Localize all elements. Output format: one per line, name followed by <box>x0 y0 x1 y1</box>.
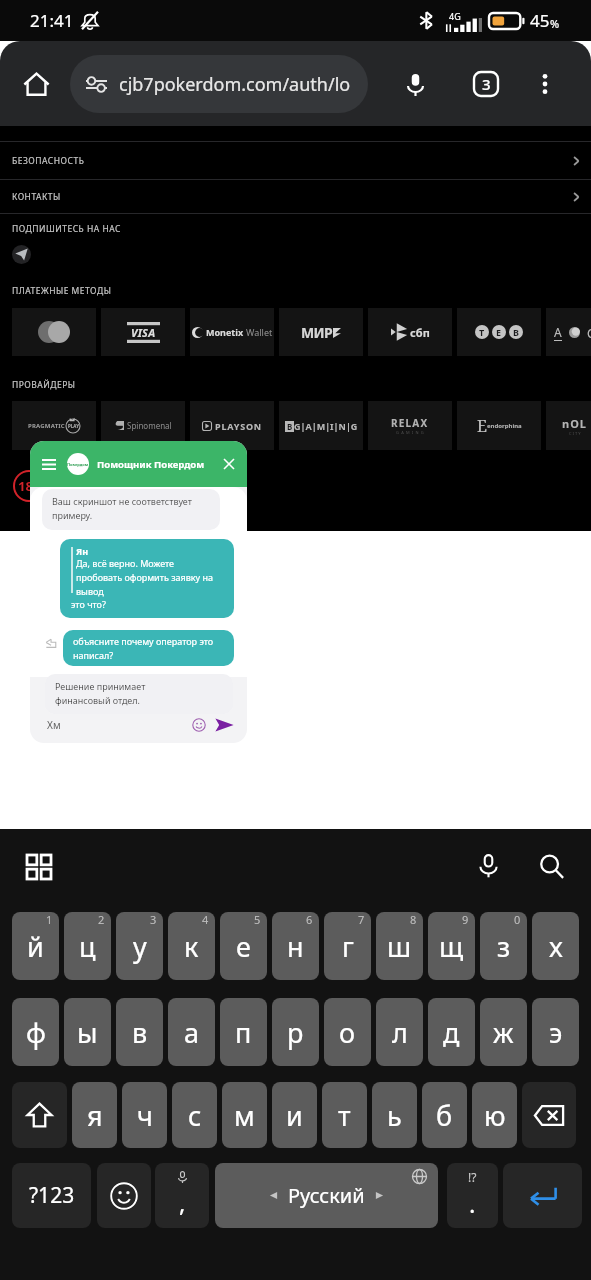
staticText: 0 <box>514 912 521 927</box>
button[interactable]: E <box>457 401 541 450</box>
staticText: МИР <box>301 323 333 342</box>
button[interactable]: з <box>480 912 527 980</box>
staticText: Monetix <box>206 326 244 338</box>
button[interactable]: ю <box>472 1082 517 1148</box>
staticText: 3 <box>150 912 157 927</box>
button[interactable]: и <box>272 1082 317 1148</box>
button[interactable]: Menu <box>37 453 60 476</box>
staticText: д <box>443 1014 460 1051</box>
button[interactable]: м <box>222 1082 267 1148</box>
staticText: к <box>184 928 199 965</box>
button[interactable]: д <box>428 998 475 1066</box>
button[interactable]: ш <box>376 912 423 980</box>
button[interactable]: A <box>546 308 591 356</box>
button[interactable]: р <box>272 998 319 1066</box>
button[interactable]: More options <box>524 63 566 105</box>
staticText: PRAGMATIC <box>28 422 65 430</box>
button[interactable]: щ <box>428 912 475 980</box>
staticText: 21:41 <box>30 9 74 32</box>
button[interactable]: Voice search <box>394 63 436 105</box>
button[interactable]: B <box>279 401 363 450</box>
button[interactable]: T <box>457 308 541 356</box>
staticText: б <box>436 1097 453 1134</box>
staticText: л <box>392 1014 408 1051</box>
button[interactable]: е <box>220 912 267 980</box>
staticText: ПРОВАЙДЕРЫ <box>12 379 76 391</box>
button[interactable]: Backspace <box>522 1082 576 1148</box>
button[interactable]: PRAGMATIC <box>12 401 96 450</box>
button[interactable] <box>12 308 96 356</box>
button[interactable]: Shift <box>12 1082 67 1148</box>
button[interactable]: к <box>168 912 215 980</box>
staticText: C I T Y <box>569 431 581 436</box>
button[interactable]: Monetix <box>190 308 274 356</box>
button[interactable]: о <box>324 998 371 1066</box>
button[interactable]: БЕЗОПАСНОСТЬ <box>0 142 591 179</box>
button[interactable]: Tabs <box>465 63 507 105</box>
button[interactable]: Home <box>14 62 58 106</box>
button[interactable]: , <box>155 1163 209 1228</box>
button[interactable]: Русский <box>215 1163 438 1228</box>
button[interactable]: п <box>220 998 267 1066</box>
button[interactable]: nOL <box>546 401 591 450</box>
button[interactable]: Voice input <box>470 848 507 885</box>
staticText: о <box>339 1014 356 1051</box>
staticText: БЕЗОПАСНОСТЬ <box>12 155 85 167</box>
button[interactable]: э <box>532 998 579 1066</box>
button[interactable]: Close <box>219 454 239 474</box>
staticText: это что? <box>71 598 106 610</box>
staticText: Русский <box>288 1182 365 1209</box>
staticText: з <box>497 928 511 965</box>
button[interactable]: я <box>72 1082 117 1148</box>
button[interactable]: сбп <box>368 308 452 356</box>
button[interactable]: у <box>116 912 163 980</box>
button[interactable]: Telegram <box>12 245 31 264</box>
staticText: Да, всё верно. Можете пробовать оформить… <box>76 557 214 598</box>
staticText: VISA <box>131 325 156 340</box>
button[interactable]: в <box>116 998 163 1066</box>
button[interactable]: б <box>422 1082 467 1148</box>
button[interactable]: RELAX <box>368 401 452 450</box>
button[interactable]: PLAYSON <box>190 401 274 450</box>
button[interactable]: ж <box>480 998 527 1066</box>
button[interactable]: а <box>168 998 215 1066</box>
button[interactable]: МИР <box>279 308 363 356</box>
button[interactable]: ь <box>372 1082 417 1148</box>
button[interactable]: т <box>322 1082 367 1148</box>
staticText: G|A|M|I|N|G <box>294 420 358 432</box>
button[interactable]: Emoji <box>97 1163 151 1228</box>
staticText: 6 <box>306 912 313 927</box>
staticText: 2 <box>98 912 105 927</box>
button[interactable]: VISA <box>101 308 185 356</box>
staticText: Spinomenal <box>127 420 172 431</box>
staticText: cjb7pokerdom.com/auth/lo <box>119 72 351 97</box>
button[interactable]: КОНТАКТЫ <box>0 180 591 213</box>
button[interactable]: ф <box>12 998 59 1066</box>
button[interactable]: Keyboard layouts <box>22 850 55 883</box>
button[interactable]: ч <box>122 1082 167 1148</box>
staticText: Хм <box>47 718 61 732</box>
button[interactable]: х <box>532 912 579 980</box>
button[interactable]: н <box>272 912 319 980</box>
button[interactable]: ?123 <box>12 1163 91 1228</box>
button[interactable]: Enter <box>503 1163 582 1228</box>
staticText: 9 <box>462 912 469 927</box>
button[interactable]: ы <box>64 998 111 1066</box>
staticText: 7 <box>358 912 365 927</box>
staticText: Ваш скриншот не соответствует примеру. <box>52 495 192 522</box>
button[interactable]: л <box>376 998 423 1066</box>
staticText: ь <box>387 1097 402 1134</box>
button[interactable]: Search <box>533 848 570 885</box>
button[interactable]: й <box>12 912 59 980</box>
staticText: т <box>338 1097 351 1134</box>
button[interactable]: ц <box>64 912 111 980</box>
button[interactable]: с <box>172 1082 217 1148</box>
staticText: х <box>549 928 563 965</box>
staticText: PLAY <box>68 423 79 429</box>
staticText: 45 <box>530 9 550 32</box>
button[interactable]: . <box>447 1163 498 1228</box>
button[interactable]: г <box>324 912 371 980</box>
button[interactable]: Spinomenal <box>101 401 185 450</box>
button[interactable]: cjb7pokerdom.com/auth/lo <box>70 55 368 113</box>
staticText: E <box>496 326 502 338</box>
